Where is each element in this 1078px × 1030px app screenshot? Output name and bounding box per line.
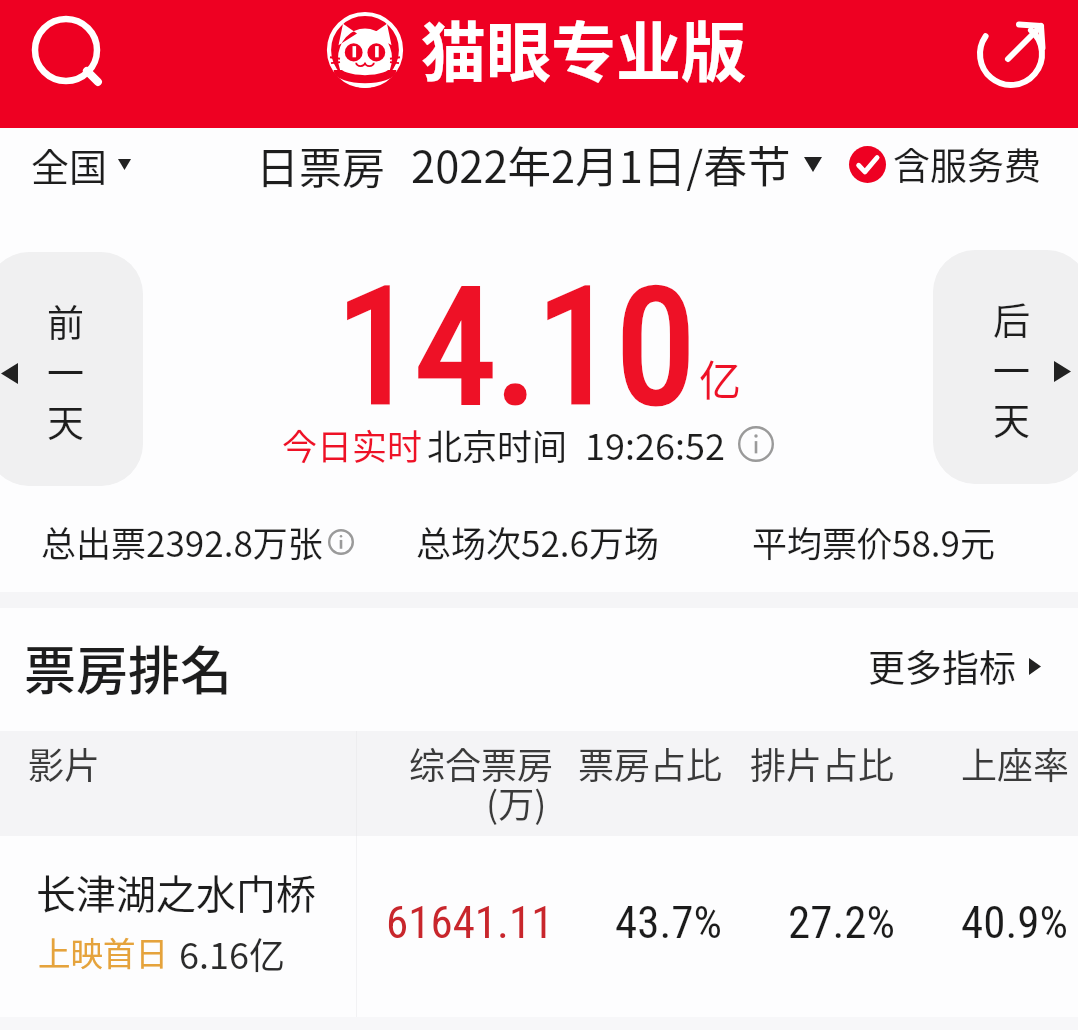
button[interactable]: 2022年2月1日/春节	[411, 133, 822, 196]
staticText: 更多指标	[868, 639, 1016, 693]
staticText: 猫眼专业版	[421, 1, 747, 95]
staticText: 总出票2392.8万张	[41, 516, 323, 567]
staticText: 40.9%	[961, 896, 1068, 949]
staticText: 后	[993, 292, 1030, 346]
staticText: 日票房	[256, 134, 385, 196]
staticText: 排片占比	[750, 737, 895, 789]
staticText: 全国	[31, 137, 108, 192]
staticText: 天	[47, 394, 84, 448]
staticText: 今日实时	[282, 419, 423, 470]
staticText: 长津湖之水门桥	[36, 863, 316, 921]
staticText: 61641.11	[386, 896, 554, 949]
button[interactable]: 更多指标	[868, 639, 1041, 693]
staticText: 总场次52.6万场	[416, 516, 660, 567]
staticText: 含服务费	[893, 137, 1041, 191]
staticText: 综合票房	[409, 737, 554, 789]
staticText: 平均票价58.9元	[752, 516, 996, 567]
button[interactable]: 长津湖之水门桥	[0, 836, 1078, 1017]
other: Next day	[1054, 361, 1071, 382]
button[interactable]: 前	[0, 252, 143, 486]
other: Previous day	[1, 363, 18, 384]
staticText: 北京时间	[427, 419, 568, 470]
staticText: 天	[993, 392, 1030, 446]
staticText: 亿	[699, 347, 742, 408]
staticText: 一	[993, 342, 1030, 396]
button[interactable]: 后	[933, 250, 1078, 484]
button[interactable]: Share	[970, 8, 1052, 90]
staticText: 票房排名	[24, 630, 233, 705]
staticText: (万)	[486, 776, 547, 828]
staticText: 14.10	[337, 254, 696, 442]
staticText: 上映首日	[38, 928, 169, 975]
staticText: 6.16亿	[179, 927, 285, 979]
button[interactable]: 含服务费	[849, 137, 1041, 191]
staticText: 一	[47, 344, 84, 398]
staticText: 前	[47, 294, 84, 348]
staticText: 上座率	[961, 737, 1070, 789]
button[interactable]: 全国	[31, 137, 131, 192]
staticText: 票房占比	[578, 737, 723, 789]
button[interactable]: Search	[26, 10, 106, 90]
staticText: 影片	[28, 737, 101, 789]
staticText: 27.2%	[788, 896, 895, 949]
staticText: 2022年2月1日/春节	[411, 133, 791, 196]
staticText: 43.7%	[615, 896, 722, 949]
staticText: 19:26:52	[585, 418, 725, 470]
